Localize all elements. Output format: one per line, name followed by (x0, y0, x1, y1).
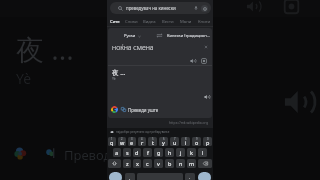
button[interactable]: Вести (162, 18, 174, 26)
button[interactable]: z (123, 159, 131, 168)
button[interactable]: b (165, 159, 174, 168)
button[interactable]: 9 (192, 137, 201, 146)
button[interactable]: g (154, 148, 163, 157)
button[interactable]: k (187, 148, 196, 157)
button[interactable]: Мапи (180, 18, 192, 26)
staticText: Кинески (традицион... (167, 33, 210, 38)
staticText: Сите (110, 19, 120, 25)
staticText: ноќна смена (112, 43, 154, 53)
staticText: z (126, 160, 129, 167)
staticText: . (189, 175, 191, 180)
staticText: Yè (16, 69, 32, 88)
staticText: m (189, 160, 195, 167)
button[interactable]: m (187, 159, 196, 168)
staticText: c (146, 160, 149, 167)
staticText: https://mk.wikipedia.org (169, 120, 209, 125)
button[interactable]: Period (185, 173, 195, 180)
button[interactable]: Voice search (194, 6, 198, 10)
staticText: s (126, 149, 129, 156)
button[interactable]: h (165, 148, 174, 157)
staticText: 2 (121, 137, 123, 141)
button[interactable]: f (143, 148, 152, 157)
button[interactable]: Clear (204, 45, 208, 49)
button[interactable]: Видеа (143, 18, 156, 26)
button[interactable]: a (113, 148, 121, 157)
staticText: 9 (196, 137, 198, 141)
button[interactable]: 0 (203, 137, 212, 146)
staticText: Преведи уште (128, 107, 159, 113)
button[interactable]: c (143, 159, 152, 168)
button[interactable]: 5 (148, 137, 157, 146)
staticText: d (135, 149, 139, 156)
staticText: j (180, 149, 182, 156)
button[interactable]: x (133, 159, 141, 168)
staticText: f (147, 149, 149, 156)
staticText: 1 (111, 137, 113, 141)
staticText: n (179, 160, 183, 167)
button[interactable]: Swap languages (156, 32, 163, 39)
staticText: најдобри резултати од пребарување (116, 130, 170, 134)
button[interactable]: l (198, 148, 207, 157)
button[interactable]: Слики (125, 18, 138, 26)
button[interactable]: Google Lens (201, 5, 208, 12)
button[interactable]: Listen source (190, 58, 196, 64)
button[interactable]: n (176, 159, 185, 168)
staticText: g (157, 149, 161, 156)
button[interactable]: Кинески (традицион... (167, 30, 212, 41)
staticText: 3 (131, 137, 133, 141)
button[interactable]: Преведи уште (111, 104, 212, 115)
button[interactable]: j (176, 148, 185, 157)
button[interactable]: Comma (125, 173, 135, 180)
button[interactable]: Сите (110, 18, 120, 26)
staticText: p (206, 139, 210, 146)
staticText: y (162, 139, 165, 146)
button[interactable]: Listen translation (204, 94, 210, 100)
button[interactable]: 7 (170, 137, 179, 146)
staticText: Книги (198, 19, 211, 25)
staticText: Видеа (143, 19, 156, 25)
staticText: i (185, 139, 187, 146)
staticText: 4 (141, 137, 143, 141)
button[interactable]: Backspace (198, 159, 212, 168)
button[interactable]: 2 (118, 137, 126, 146)
staticText: w (120, 139, 125, 146)
staticText: q (110, 139, 114, 146)
button[interactable]: Руски (108, 30, 156, 41)
staticText: e (130, 139, 134, 146)
staticText: v (157, 160, 160, 167)
staticText: 夜 ... (16, 30, 74, 68)
button[interactable]: Книги (198, 18, 211, 26)
staticText: 5 (152, 137, 154, 141)
staticText: Руски (124, 33, 136, 39)
button[interactable]: Symbols (109, 172, 122, 180)
staticText: 6 (163, 137, 165, 141)
staticText: Yè (112, 76, 116, 81)
button[interactable]: Shift (108, 159, 121, 168)
button[interactable]: Search (198, 172, 211, 180)
button[interactable]: d (133, 148, 141, 157)
button[interactable]: 1 (108, 137, 116, 146)
staticText: Вести (162, 19, 174, 25)
button[interactable]: 3 (128, 137, 136, 146)
staticText: Превод (64, 146, 112, 164)
button[interactable]: преведувач на кинески (110, 2, 211, 14)
staticText: a (115, 149, 119, 156)
staticText: b (168, 160, 172, 167)
staticText: 7 (174, 137, 176, 141)
button[interactable]: 6 (159, 137, 168, 146)
staticText: o (195, 139, 199, 146)
staticText: h (168, 149, 172, 156)
staticText: Слики (125, 19, 138, 25)
button[interactable]: v (154, 159, 163, 168)
staticText: k (190, 149, 193, 156)
button[interactable]: 8 (181, 137, 190, 146)
staticText: x (136, 160, 139, 167)
staticText: 0 (207, 137, 209, 141)
button[interactable]: Copy source (201, 58, 207, 64)
staticText: u (173, 139, 177, 146)
staticText: преведувач на кинески (126, 5, 176, 11)
staticText: 夜 ... (112, 68, 126, 77)
button[interactable]: 4 (138, 137, 146, 146)
button[interactable]: s (123, 148, 131, 157)
